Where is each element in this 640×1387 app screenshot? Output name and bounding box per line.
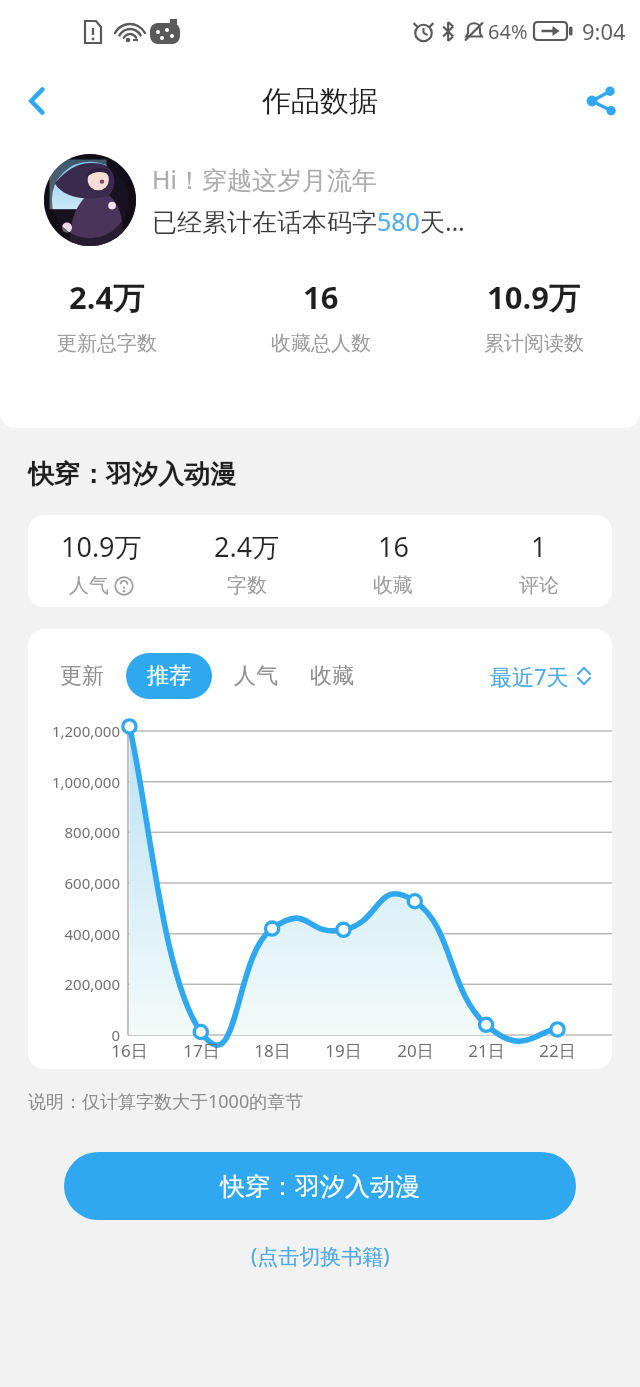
staticText: 更新 bbox=[60, 662, 104, 690]
button[interactable]: 2.4万 bbox=[0, 276, 214, 356]
staticText: 评论 bbox=[519, 573, 559, 598]
staticText: 1,000,000 bbox=[51, 772, 120, 792]
button[interactable]: 最近7天 bbox=[486, 657, 596, 695]
staticText: 收藏 bbox=[310, 662, 354, 690]
button[interactable]: 快穿：羽汐入动漫 bbox=[64, 1152, 576, 1220]
staticText: 16 bbox=[303, 276, 339, 318]
staticText: 快穿：羽汐入动漫 bbox=[220, 1171, 420, 1202]
staticText: 17日 bbox=[183, 1039, 220, 1062]
button[interactable]: 16 bbox=[320, 528, 466, 607]
staticText: Hi！穿越这岁月流年 bbox=[152, 162, 377, 196]
button[interactable]: 16 bbox=[214, 276, 427, 356]
button[interactable]: 10.9万 bbox=[427, 276, 640, 356]
staticText: 最近7天 bbox=[490, 661, 569, 691]
staticText: 10.9万 bbox=[487, 276, 580, 318]
staticText: 作品数据 bbox=[262, 83, 378, 120]
staticText: 2.4万 bbox=[69, 276, 145, 318]
staticText: 16日 bbox=[111, 1039, 148, 1062]
staticText: 字数 bbox=[227, 573, 267, 598]
staticText: 200,000 bbox=[64, 974, 120, 994]
staticText: 快穿：羽汐入动漫 bbox=[28, 458, 236, 491]
staticText: 18日 bbox=[254, 1039, 291, 1062]
staticText: 20日 bbox=[397, 1039, 434, 1062]
button[interactable]: (点击切换书籍) bbox=[241, 1238, 400, 1275]
staticText: 1 bbox=[531, 528, 547, 565]
button[interactable]: 推荐 bbox=[126, 653, 212, 699]
staticText: 10.9万 bbox=[61, 528, 142, 565]
button[interactable]: Share bbox=[572, 72, 630, 130]
staticText: 收藏 bbox=[373, 573, 413, 598]
staticText: 9:04 bbox=[582, 16, 626, 46]
button[interactable]: 人气 bbox=[218, 653, 294, 699]
staticText: 600,000 bbox=[64, 873, 120, 893]
button[interactable]: 收藏 bbox=[294, 653, 370, 699]
staticText: 人气 bbox=[69, 573, 109, 598]
staticText: 16 bbox=[378, 528, 409, 565]
staticText: 收藏总人数 bbox=[271, 331, 371, 356]
button[interactable]: 更新 bbox=[44, 653, 120, 699]
staticText: 推荐 bbox=[147, 662, 191, 690]
staticText: 800,000 bbox=[64, 822, 120, 842]
staticText: 22日 bbox=[539, 1039, 576, 1062]
staticText: (点击切换书籍) bbox=[251, 1242, 390, 1271]
staticText: 人气 bbox=[234, 662, 278, 690]
button[interactable]: 10.9万 bbox=[28, 528, 174, 607]
staticText: 400,000 bbox=[64, 924, 120, 944]
staticText: 1,200,000 bbox=[51, 721, 120, 741]
button[interactable]: 2.4万 bbox=[174, 528, 320, 607]
staticText: 2.4万 bbox=[214, 528, 280, 565]
staticText: 已经累计在话本码字580天… bbox=[152, 204, 465, 238]
staticText: 21日 bbox=[468, 1039, 505, 1062]
staticText: 说明：仅计算字数大于1000的章节 bbox=[28, 1089, 304, 1114]
button[interactable]: Back bbox=[8, 72, 66, 130]
staticText: 0 bbox=[111, 1025, 120, 1045]
staticText: 更新总字数 bbox=[57, 331, 157, 356]
staticText: 19日 bbox=[325, 1039, 362, 1062]
button[interactable]: Hi！穿越这岁月流年 bbox=[44, 154, 620, 246]
staticText: 累计阅读数 bbox=[484, 331, 584, 356]
button[interactable]: 1 bbox=[466, 528, 612, 607]
staticText: 64% bbox=[488, 18, 528, 45]
